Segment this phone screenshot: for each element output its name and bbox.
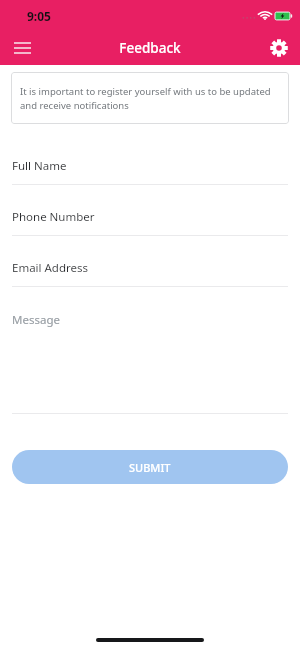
button[interactable]: Full Name <box>0 148 300 199</box>
staticText: Feedback <box>119 39 181 57</box>
button[interactable]: Message <box>0 301 300 414</box>
button[interactable]: Phone Number <box>0 199 300 250</box>
staticText: Message <box>12 312 60 328</box>
staticText: It is important to register yourself wit… <box>20 85 280 112</box>
button[interactable]: It is important to register yourself wit… <box>11 72 289 124</box>
button[interactable]: Open navigation menu <box>8 34 36 62</box>
staticText: SUBMIT <box>129 460 171 475</box>
button[interactable]: SUBMIT <box>12 450 288 484</box>
button[interactable]: Email Address <box>0 250 300 301</box>
staticText: Phone Number <box>12 209 95 225</box>
staticText: Email Address <box>12 260 89 276</box>
staticText: Full Name <box>12 158 67 174</box>
staticText: 9:05 <box>27 8 51 24</box>
button[interactable]: Settings <box>265 34 293 62</box>
